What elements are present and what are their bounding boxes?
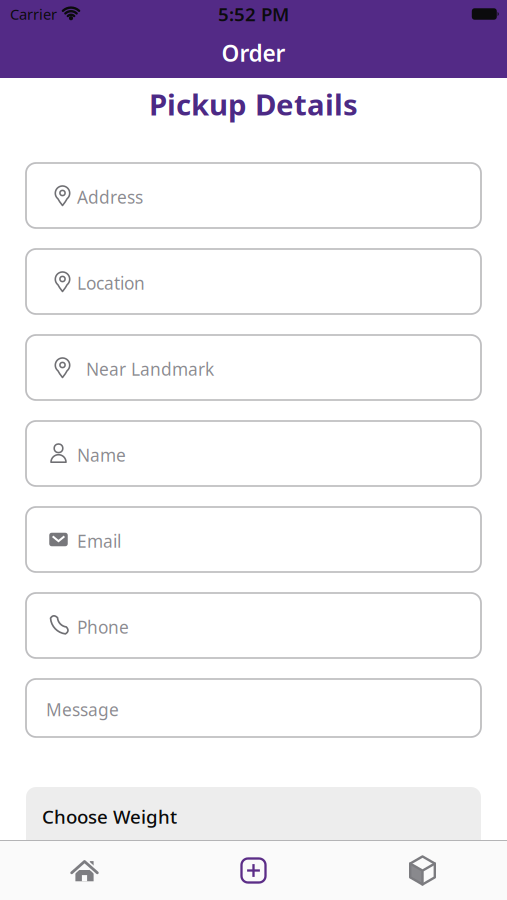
button[interactable]: Address — [26, 163, 481, 228]
staticText: Near Landmark — [86, 357, 214, 380]
staticText: Location — [77, 271, 145, 294]
button[interactable]: Location — [26, 249, 481, 314]
button[interactable]: Message — [26, 679, 481, 737]
staticText: Message — [46, 698, 119, 721]
staticText: Order — [221, 38, 285, 68]
staticText: Email — [77, 529, 121, 552]
staticText: Carrier — [10, 4, 57, 24]
button[interactable]: Home — [0, 841, 169, 900]
staticText: Phone — [77, 615, 129, 638]
staticText: Choose Weight — [42, 804, 177, 829]
button[interactable]: Orders — [338, 841, 507, 900]
button[interactable]: Phone — [26, 593, 481, 658]
button[interactable]: New Order — [169, 841, 338, 900]
staticText: Name — [77, 443, 126, 466]
staticText: 5:52 PM — [218, 2, 289, 26]
staticText: Pickup Details — [149, 84, 358, 123]
button[interactable]: Near Landmark — [26, 335, 481, 400]
button[interactable]: Name — [26, 421, 481, 486]
staticText: Address — [77, 185, 143, 208]
button[interactable]: Email — [26, 507, 481, 572]
